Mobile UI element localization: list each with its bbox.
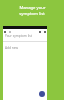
button[interactable]: Add symptom: [39, 91, 45, 97]
staticText: Your symptom list: [5, 34, 32, 38]
staticText: Manage your: [19, 5, 46, 11]
staticText: Add new: [5, 46, 18, 50]
staticText: symptom list: [19, 11, 45, 17]
